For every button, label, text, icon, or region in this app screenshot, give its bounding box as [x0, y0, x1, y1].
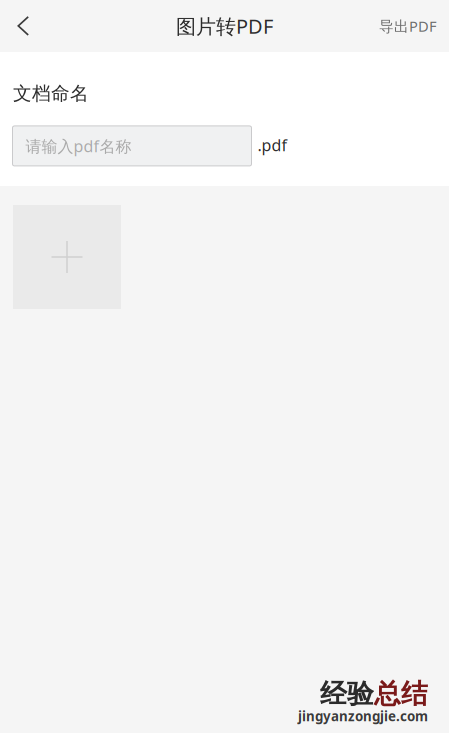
- staticText: 总结: [374, 677, 428, 710]
- staticText: 经验: [320, 677, 374, 710]
- staticText: 导出PDF: [379, 16, 437, 36]
- staticText: 图片转PDF: [176, 13, 273, 39]
- staticText: 文档命名: [13, 82, 89, 105]
- button[interactable]: Back: [0, 0, 46, 52]
- staticText: 请输入pdf名称: [25, 135, 131, 156]
- button[interactable]: 导出PDF: [379, 0, 449, 52]
- staticText: jingyanzongjie.com: [298, 707, 428, 725]
- staticText: .pdf: [257, 134, 287, 155]
